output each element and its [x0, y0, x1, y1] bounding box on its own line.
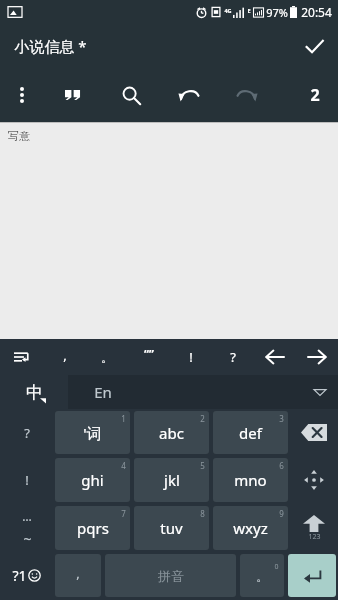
button[interactable]: Function key — [290, 409, 338, 456]
staticText: 20:54 — [301, 4, 332, 20]
button[interactable]: '词 — [55, 411, 130, 454]
staticText: 5 — [200, 460, 205, 471]
button[interactable]: … — [0, 504, 53, 552]
button[interactable]: wxyz — [213, 506, 288, 550]
button[interactable]: Function key — [290, 456, 338, 504]
staticText: En — [94, 382, 112, 402]
staticText: 97% — [266, 5, 288, 20]
button[interactable]: Search — [102, 68, 160, 122]
staticText: 4G — [224, 7, 232, 14]
staticText: 8 — [200, 508, 205, 519]
staticText: ?1 — [12, 566, 27, 585]
staticText: “” — [144, 346, 154, 361]
staticText: ! — [25, 471, 29, 489]
staticText: 2 — [200, 413, 205, 424]
button[interactable]: “” — [128, 339, 170, 375]
button[interactable]: Save — [290, 24, 338, 68]
button[interactable]: More options — [0, 68, 44, 122]
button[interactable]: def — [213, 411, 288, 454]
button[interactable]: ! — [170, 339, 212, 375]
button[interactable]: 2 — [292, 68, 338, 122]
button[interactable]: 。 — [240, 554, 284, 597]
staticText: ~ — [23, 529, 32, 548]
staticText: 2 — [310, 84, 320, 106]
button[interactable]: ?1 — [0, 552, 53, 599]
button[interactable]: En — [68, 375, 338, 409]
staticText: pqrs — [77, 518, 109, 538]
staticText: 写意 — [8, 129, 30, 143]
staticText: ? — [230, 348, 236, 366]
staticText: E — [247, 7, 251, 14]
button[interactable]: Quote — [44, 68, 102, 122]
button[interactable]: Key — [254, 339, 296, 375]
staticText: 4 — [121, 460, 126, 471]
staticText: , — [63, 346, 67, 364]
staticText: ? — [24, 424, 30, 442]
staticText: tuv — [160, 518, 183, 538]
staticText: def — [239, 423, 262, 443]
staticText: 。 — [101, 350, 113, 365]
button[interactable]: ! — [0, 456, 53, 504]
staticText: 0 — [274, 562, 279, 572]
button[interactable]: mno — [213, 458, 288, 502]
staticText: '词 — [83, 423, 102, 443]
button[interactable]: 拼音 — [105, 554, 236, 597]
staticText: ghi — [81, 470, 104, 490]
staticText: 中 — [26, 382, 43, 403]
button[interactable]: pqrs — [55, 506, 130, 550]
staticText: 1 — [121, 413, 126, 424]
button[interactable]: Key — [0, 339, 43, 375]
button[interactable]: ? — [212, 339, 254, 375]
staticText: jkl — [164, 470, 180, 490]
staticText: 7 — [121, 508, 126, 519]
staticText: 。 — [256, 568, 269, 584]
staticText: mno — [234, 470, 267, 490]
button[interactable]: ghi — [55, 458, 130, 502]
button[interactable]: , — [43, 339, 86, 375]
staticText: ! — [189, 348, 193, 366]
staticText: 123 — [308, 532, 321, 542]
staticText: abc — [159, 423, 184, 443]
staticText: 拼音 — [158, 568, 184, 584]
button[interactable]: ? — [0, 409, 53, 456]
button[interactable]: Function key — [290, 504, 338, 552]
button[interactable]: tuv — [134, 506, 209, 550]
button[interactable]: Enter — [288, 554, 336, 597]
button[interactable]: Chinese input — [0, 375, 68, 409]
staticText: wxyz — [233, 518, 268, 538]
staticText: … — [22, 508, 32, 524]
button[interactable]: abc — [134, 411, 209, 454]
button[interactable]: , — [55, 554, 101, 597]
staticText: , — [76, 564, 80, 582]
staticText: 6 — [279, 460, 284, 471]
staticText: 小说信息 * — [14, 36, 87, 56]
staticText: 3 — [279, 413, 284, 424]
staticText: 9 — [279, 508, 284, 519]
button[interactable]: jkl — [134, 458, 209, 502]
button[interactable]: Redo — [218, 68, 276, 122]
button[interactable]: Undo — [160, 68, 218, 122]
button[interactable]: 。 — [86, 339, 128, 375]
button[interactable]: Key — [296, 339, 338, 375]
